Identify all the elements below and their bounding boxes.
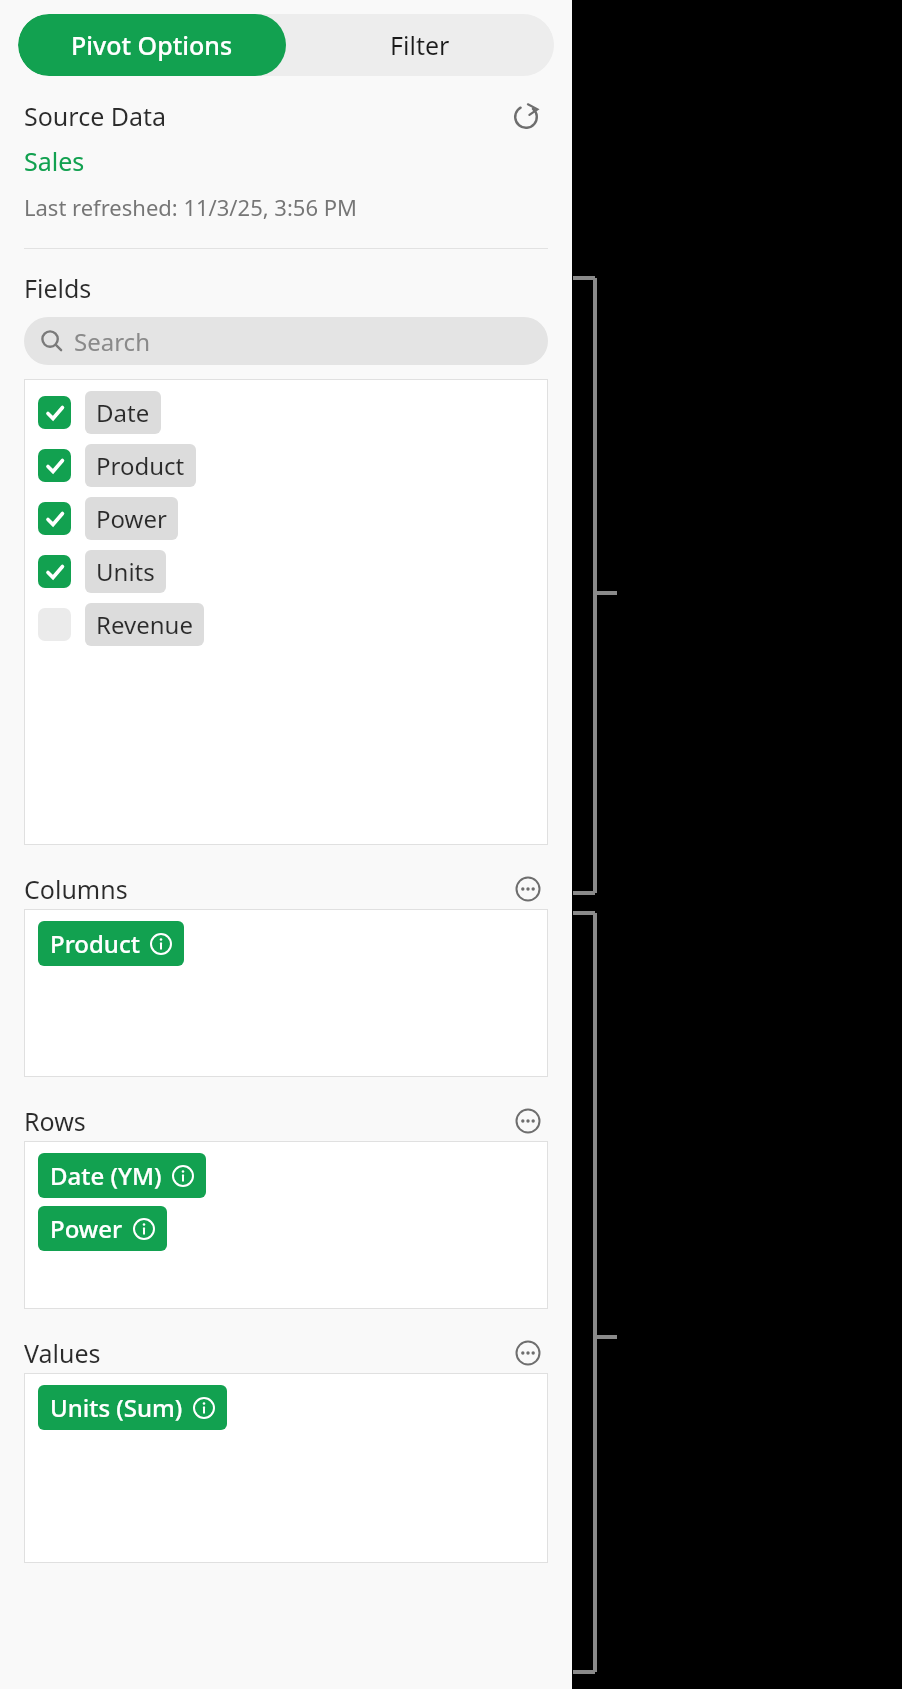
button[interactable]: Filter	[286, 14, 554, 76]
staticText: Date (YM)	[50, 1159, 162, 1192]
staticText: Filter	[390, 28, 450, 62]
staticText: Product	[96, 449, 185, 482]
button[interactable]: Units	[38, 550, 166, 593]
button[interactable]: Product	[38, 444, 196, 487]
button[interactable]: Date	[38, 391, 161, 434]
button[interactable]: Refresh	[504, 94, 548, 138]
staticText: Units (Sum)	[50, 1391, 183, 1424]
staticText: Power	[50, 1212, 123, 1245]
button[interactable]: Product	[38, 921, 184, 966]
staticText: Source Data	[24, 99, 167, 133]
button[interactable]: Date (YM)	[38, 1153, 206, 1198]
button[interactable]: Search	[24, 317, 548, 365]
staticText: Power	[96, 502, 167, 535]
staticText: Last refreshed: 11/3/25, 3:56 PM	[24, 192, 357, 222]
staticText: Search	[74, 325, 150, 358]
staticText: Pivot Options	[71, 28, 233, 62]
staticText: Date	[96, 396, 150, 429]
staticText: Columns	[24, 872, 128, 906]
staticText: Rows	[24, 1104, 86, 1138]
button[interactable]: Power	[38, 1206, 167, 1251]
staticText: Units	[96, 555, 155, 588]
button[interactable]: Pivot Options	[18, 14, 286, 76]
button[interactable]: Power	[38, 497, 178, 540]
staticText: Values	[24, 1336, 101, 1370]
button[interactable]: Rows options	[508, 1101, 548, 1141]
staticText: Fields	[24, 271, 92, 305]
button[interactable]: Columns options	[508, 869, 548, 909]
button[interactable]: Values options	[508, 1333, 548, 1373]
button[interactable]: Revenue	[38, 603, 204, 646]
staticText: Product	[50, 927, 140, 960]
staticText: Revenue	[96, 608, 193, 641]
button[interactable]: Sales	[24, 144, 85, 178]
button[interactable]: Units (Sum)	[38, 1385, 227, 1430]
